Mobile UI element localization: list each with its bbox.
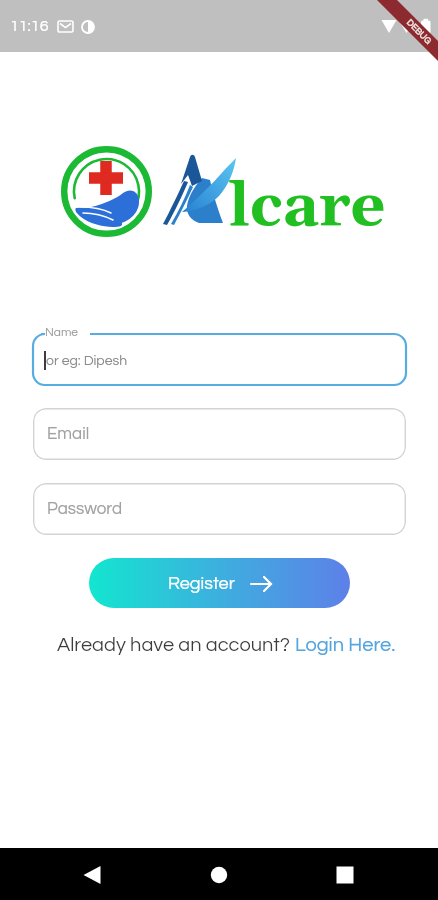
button[interactable]: Back <box>66 848 118 900</box>
staticText: 11:16 <box>10 18 49 34</box>
staticText: Password <box>47 500 123 518</box>
staticText: Already have an account? <box>57 635 295 656</box>
staticText: or eg: Dipesh <box>46 354 128 368</box>
button[interactable]: Name <box>33 325 406 385</box>
staticText: Register <box>168 574 235 593</box>
button[interactable]: Home <box>193 848 245 900</box>
staticText: lcare <box>229 168 386 245</box>
button[interactable]: Register <box>89 558 350 608</box>
button[interactable]: Password <box>33 483 406 535</box>
staticText: Email <box>47 425 90 443</box>
button[interactable]: Login Here. <box>295 635 396 656</box>
staticText: Name <box>45 326 79 338</box>
button[interactable]: Recent apps <box>319 848 371 900</box>
button[interactable]: Email <box>33 408 406 460</box>
